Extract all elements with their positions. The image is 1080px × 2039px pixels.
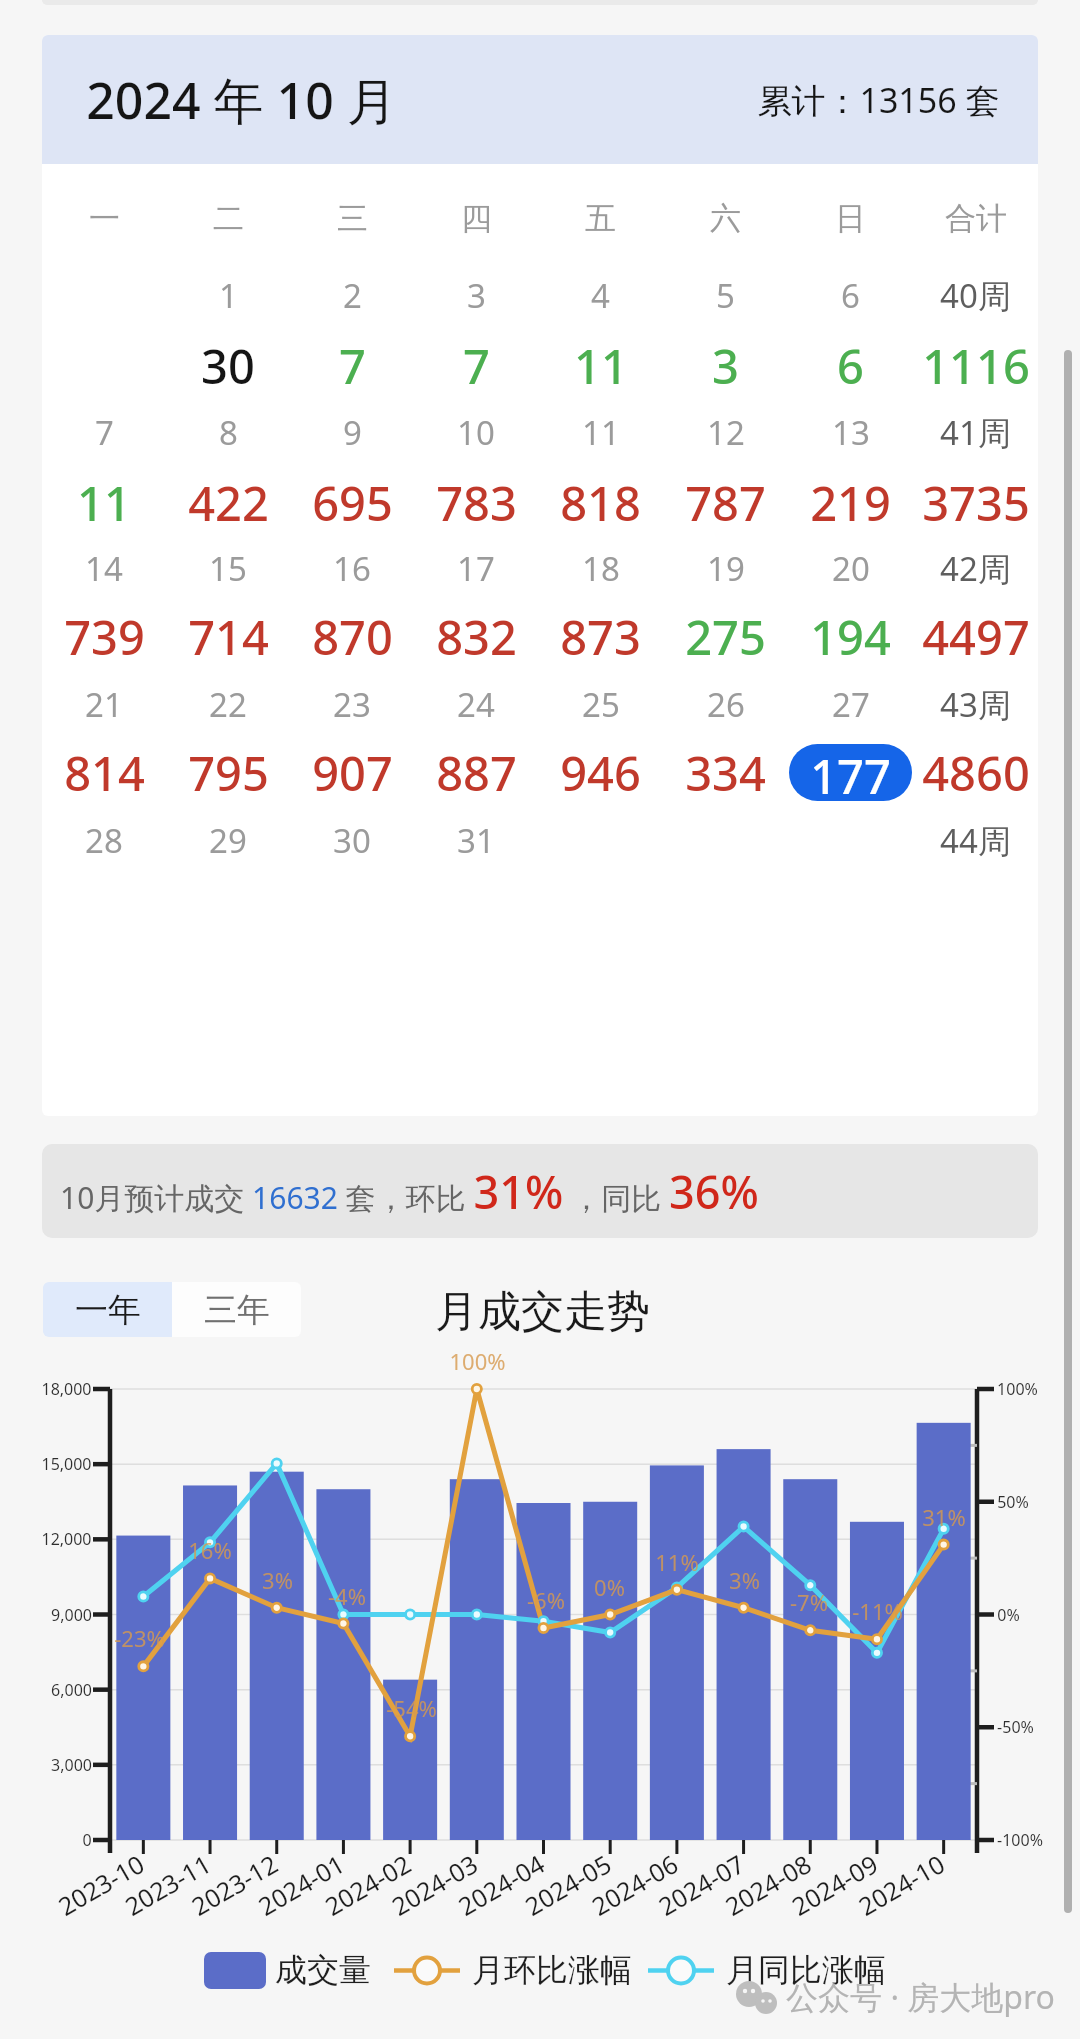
button[interactable]: 787 [663, 471, 788, 533]
button[interactable]: 6 [788, 334, 913, 396]
button[interactable]: 44周 [913, 809, 1038, 871]
staticText: 17 [457, 546, 495, 591]
button[interactable]: 9 [290, 401, 414, 463]
button[interactable]: 783 [414, 471, 538, 533]
button[interactable]: 三 [290, 187, 414, 249]
button[interactable]: 18 [538, 537, 663, 599]
button[interactable]: 合计 [913, 187, 1038, 249]
button[interactable]: 26 [663, 673, 788, 735]
button[interactable]: 887 [414, 741, 538, 803]
button[interactable]: 23 [290, 673, 414, 735]
button[interactable]: 13 [788, 401, 913, 463]
button[interactable]: 10 [414, 401, 538, 463]
button[interactable]: 10月预计成交 16632 套，环比 31% ，同比 36% [42, 1144, 1038, 1238]
button[interactable]: 1116 [913, 334, 1038, 396]
button[interactable]: 818 [538, 471, 663, 533]
button[interactable]: 日 [788, 187, 913, 249]
button[interactable]: 25 [538, 673, 663, 735]
button[interactable]: 4 [538, 264, 663, 326]
staticText: 8 [219, 410, 238, 455]
button[interactable]: 一年 [43, 1282, 172, 1337]
button[interactable]: 19 [663, 537, 788, 599]
button[interactable]: 194 [788, 605, 913, 667]
button[interactable]: 7 [290, 334, 414, 396]
button[interactable]: 795 [166, 741, 290, 803]
button[interactable]: 873 [538, 605, 663, 667]
button[interactable]: 7 [414, 334, 538, 396]
button[interactable]: 5 [663, 264, 788, 326]
button[interactable]: 870 [290, 605, 414, 667]
button[interactable]: 六 [663, 187, 788, 249]
button[interactable]: 7 [42, 401, 166, 463]
button[interactable]: 14 [42, 537, 166, 599]
button[interactable]: 832 [414, 605, 538, 667]
button[interactable]: 6 [788, 264, 913, 326]
button[interactable]: 22 [166, 673, 290, 735]
button[interactable]: 11 [42, 471, 166, 533]
button[interactable]: 二 [166, 187, 290, 249]
staticText: 31 [457, 818, 495, 863]
button[interactable]: 422 [166, 471, 290, 533]
button[interactable]: 8 [166, 401, 290, 463]
staticText: 三年 [204, 1289, 270, 1331]
button[interactable]: 11 [538, 334, 663, 396]
button[interactable]: 30 [290, 809, 414, 871]
button[interactable]: 21 [42, 673, 166, 735]
button[interactable]: 五 [538, 187, 663, 249]
button[interactable]: 30 [166, 334, 290, 396]
button[interactable]: 31 [414, 809, 538, 871]
button[interactable]: 219 [788, 471, 913, 533]
staticText: 26 [707, 682, 745, 727]
button[interactable]: 714 [166, 605, 290, 667]
button[interactable]: 177 [788, 741, 913, 803]
button[interactable]: 739 [42, 605, 166, 667]
staticText: 21 [85, 682, 123, 727]
button[interactable]: 28 [42, 809, 166, 871]
staticText: 18 [582, 546, 620, 591]
button[interactable]: 4860 [913, 741, 1038, 803]
button[interactable]: 334 [663, 741, 788, 803]
button[interactable]: 907 [290, 741, 414, 803]
button[interactable]: 29 [166, 809, 290, 871]
staticText: 19 [707, 546, 745, 591]
button[interactable]: 41周 [913, 401, 1038, 463]
button[interactable]: 四 [414, 187, 538, 249]
staticText: 23 [333, 682, 371, 727]
button[interactable]: 16 [290, 537, 414, 599]
button[interactable]: 11 [538, 401, 663, 463]
staticText: 一 [89, 199, 120, 238]
button[interactable]: 一 [42, 187, 166, 249]
button[interactable]: 3 [663, 334, 788, 396]
button[interactable]: 27 [788, 673, 913, 735]
button[interactable]: 成交量 [204, 1948, 371, 1992]
button[interactable]: 月环比涨幅 [394, 1948, 632, 1992]
staticText: 7 [463, 334, 490, 396]
button[interactable]: 946 [538, 741, 663, 803]
staticText: 422 [188, 471, 269, 533]
staticText: 6,000 [51, 1679, 92, 1701]
button[interactable]: 42周 [913, 537, 1038, 599]
button[interactable]: 814 [42, 741, 166, 803]
button[interactable]: 三年 [172, 1282, 301, 1337]
button[interactable]: 40周 [913, 264, 1038, 326]
button[interactable]: 20 [788, 537, 913, 599]
button[interactable]: 4497 [913, 605, 1038, 667]
button[interactable]: 15 [166, 537, 290, 599]
button[interactable]: 3 [414, 264, 538, 326]
button[interactable]: 12 [663, 401, 788, 463]
button[interactable]: 275 [663, 605, 788, 667]
button[interactable]: 月同比涨幅 [648, 1948, 886, 1992]
button[interactable]: 43周 [913, 673, 1038, 735]
button[interactable]: 24 [414, 673, 538, 735]
button[interactable]: 3735 [913, 471, 1038, 533]
button[interactable]: 2 [290, 264, 414, 326]
button[interactable]: 1 [166, 264, 290, 326]
staticText: 11 [582, 410, 620, 455]
button[interactable]: 695 [290, 471, 414, 533]
button[interactable]: 17 [414, 537, 538, 599]
